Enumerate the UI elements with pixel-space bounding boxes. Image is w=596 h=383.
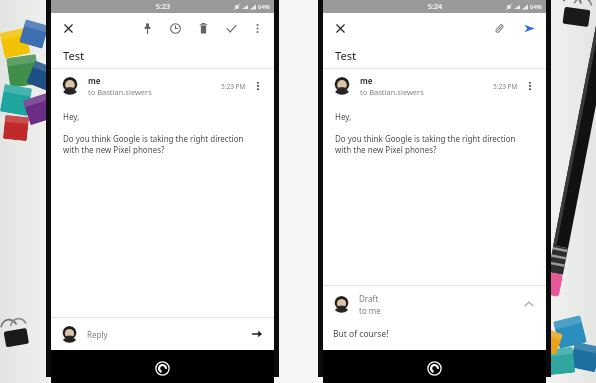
staticText: Test xyxy=(63,48,85,63)
button[interactable]: Close xyxy=(331,19,349,37)
staticText: Do you think Google is taking the right … xyxy=(63,133,260,156)
staticText: Test xyxy=(335,48,357,63)
staticText: Hey, xyxy=(63,111,80,122)
button[interactable]: Send xyxy=(520,19,538,37)
button[interactable]: Attach file xyxy=(490,19,508,37)
staticText: 64% xyxy=(258,3,270,11)
button[interactable]: Message options xyxy=(252,80,264,92)
staticText: to Bastian.siewers xyxy=(88,87,152,97)
button[interactable]: Home xyxy=(155,361,170,376)
button[interactable]: Pin xyxy=(138,19,156,37)
staticText: Reply xyxy=(87,329,108,340)
button[interactable]: More options xyxy=(248,19,266,37)
button[interactable]: Message options xyxy=(524,80,536,92)
staticText: 5:23 xyxy=(156,2,170,12)
button[interactable]: Delete xyxy=(194,19,212,37)
button[interactable]: Forward xyxy=(250,327,264,341)
staticText: Do you think Google is taking the right … xyxy=(335,133,532,156)
button[interactable]: Snooze xyxy=(166,19,184,37)
staticText: 5:23 PM xyxy=(493,82,518,91)
button[interactable]: Collapse xyxy=(522,297,536,311)
button[interactable]: Close xyxy=(59,19,77,37)
button[interactable]: Reply xyxy=(51,318,274,350)
button[interactable]: Done xyxy=(222,19,240,37)
staticText: to Bastian.siewers xyxy=(360,87,424,97)
staticText: But of course! xyxy=(333,328,389,340)
staticText: me xyxy=(88,75,101,86)
staticText: to me xyxy=(359,305,381,316)
staticText: 64% xyxy=(530,3,542,11)
staticText: Hey, xyxy=(335,111,352,122)
button[interactable]: Draft xyxy=(323,286,546,322)
staticText: me xyxy=(360,75,373,86)
button[interactable]: me xyxy=(51,69,274,103)
button[interactable]: me xyxy=(323,69,546,103)
button[interactable]: Home xyxy=(427,361,442,376)
staticText: 5:24 xyxy=(428,2,442,12)
staticText: 5:23 PM xyxy=(221,82,246,91)
staticText: Draft xyxy=(359,293,379,304)
